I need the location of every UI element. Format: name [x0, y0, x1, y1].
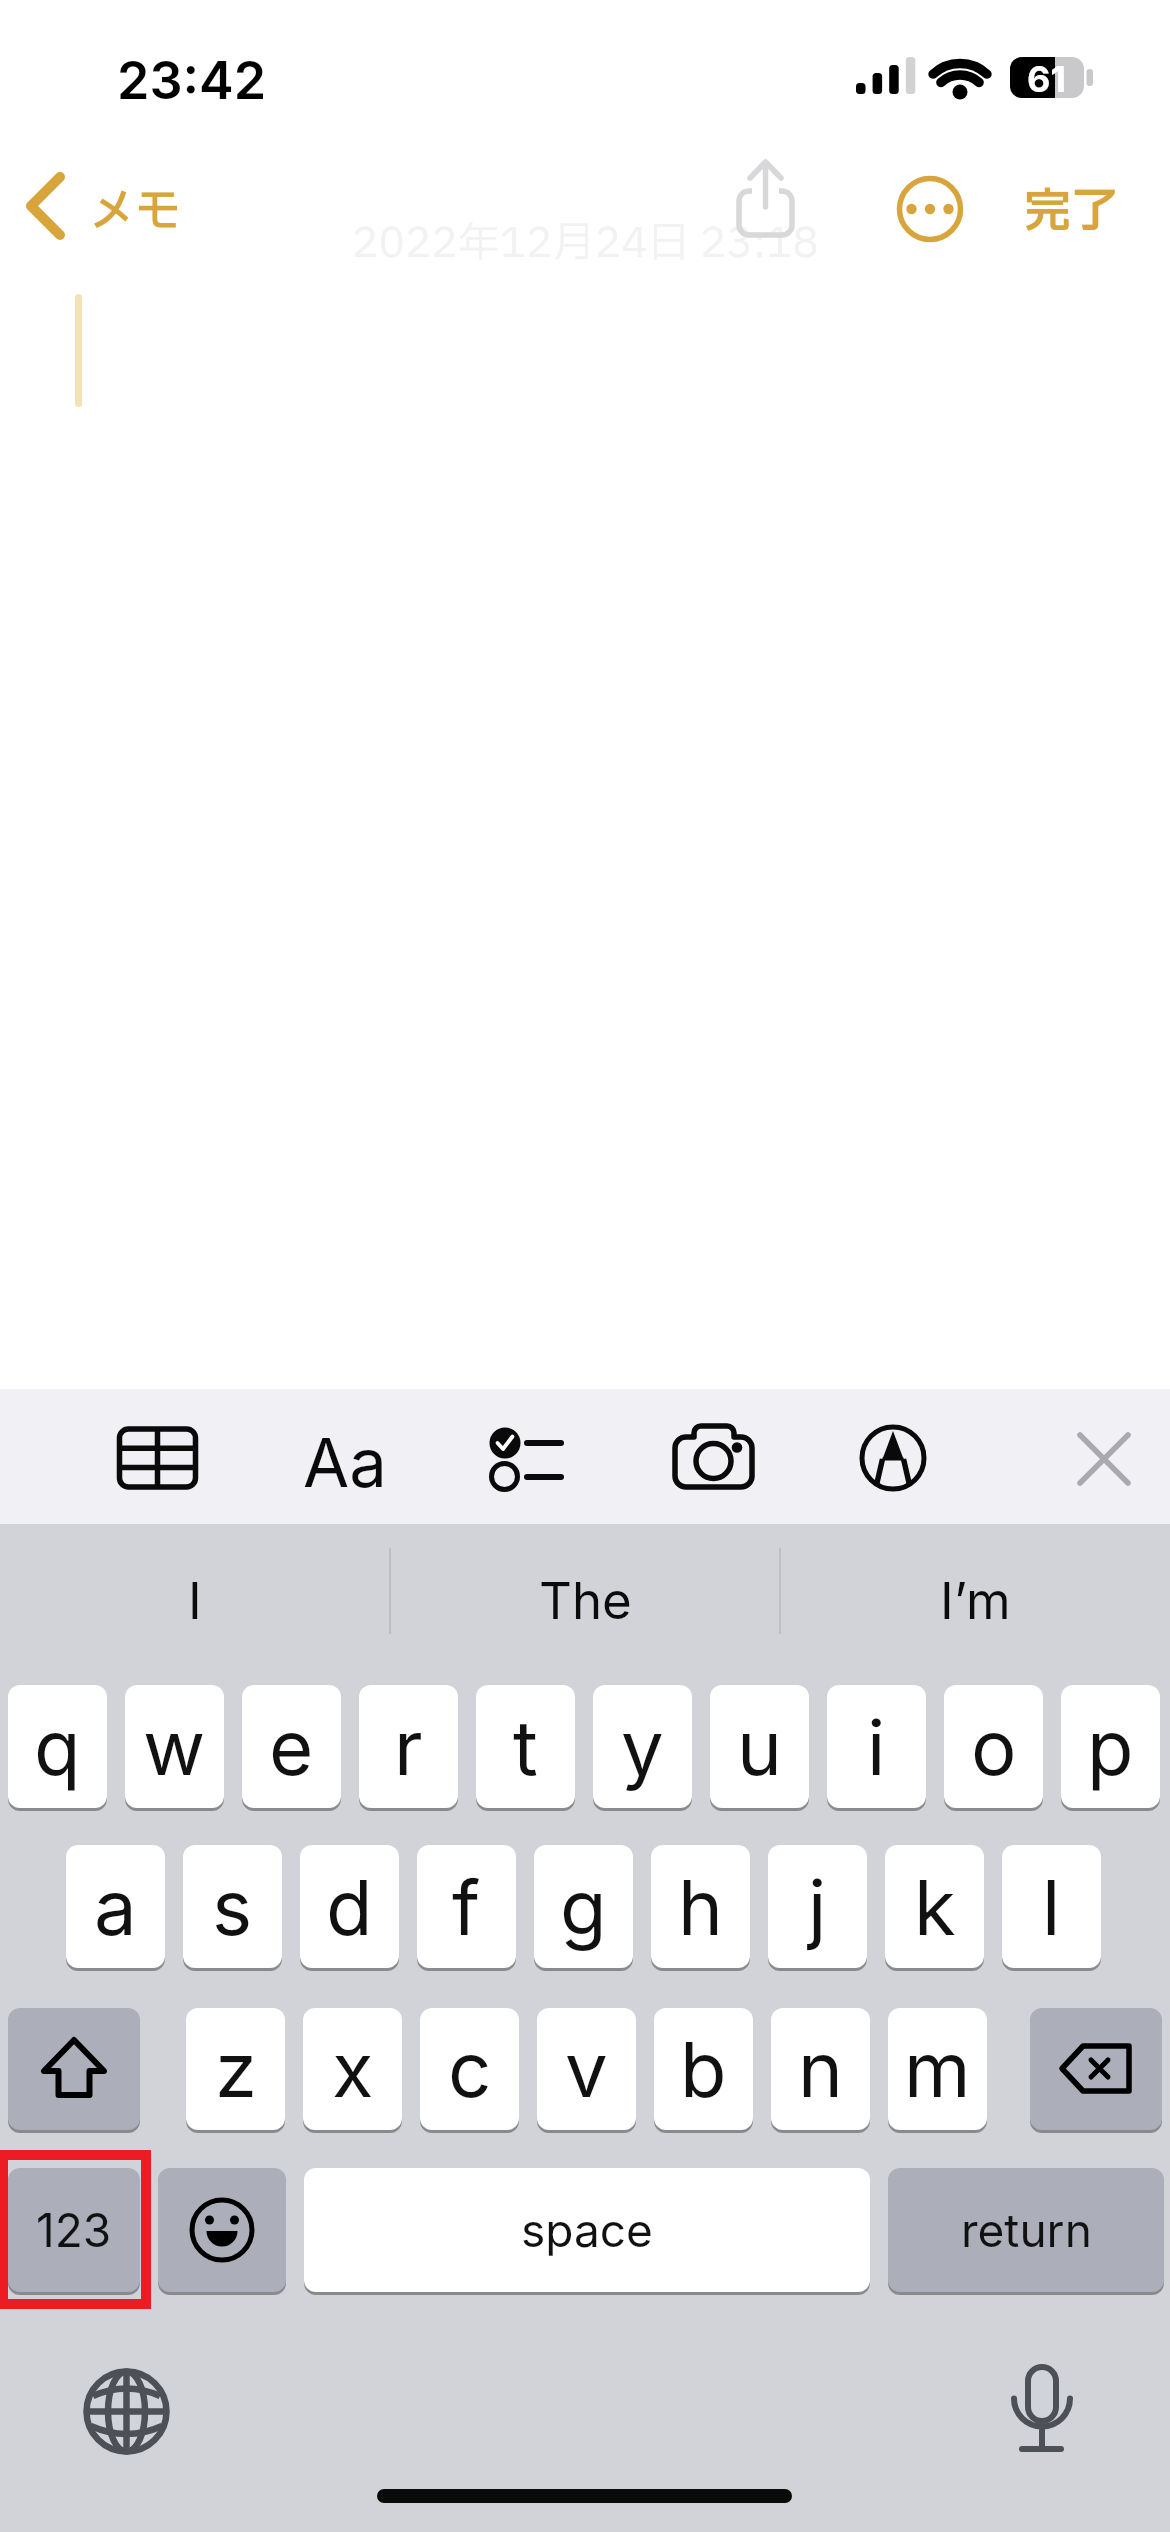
button[interactable]: Aa	[294, 1422, 395, 1494]
button[interactable]: I	[95, 1570, 295, 1630]
button[interactable]: d	[300, 1845, 399, 1968]
button[interactable]	[1005, 2355, 1080, 2455]
button[interactable]: o	[944, 1685, 1043, 1808]
button[interactable]: The	[485, 1570, 685, 1630]
staticText: I	[188, 1570, 202, 1630]
staticText: v	[565, 2023, 608, 2115]
staticText: d	[326, 1861, 373, 1953]
staticText: w	[143, 1701, 206, 1793]
staticText: f	[452, 1861, 481, 1953]
button[interactable]: v	[537, 2008, 636, 2130]
staticText: m	[904, 2023, 971, 2115]
button[interactable]: p	[1061, 1685, 1160, 1808]
button[interactable]: s	[183, 1845, 282, 1968]
staticText: j	[808, 1861, 827, 1953]
button[interactable]	[20, 170, 80, 240]
button[interactable]	[480, 1420, 575, 1500]
button[interactable]	[1068, 1425, 1138, 1495]
button[interactable]: 123	[8, 2168, 140, 2292]
staticText: 123	[36, 2202, 112, 2258]
staticText: g	[560, 1861, 607, 1953]
button[interactable]	[730, 160, 802, 240]
staticText: q	[34, 1701, 81, 1793]
button[interactable]: 完了	[1010, 177, 1132, 232]
staticText: a	[94, 1861, 137, 1953]
staticText: Aa	[303, 1422, 387, 1494]
button[interactable]: w	[125, 1685, 224, 1808]
staticText: I’m	[940, 1570, 1011, 1630]
staticText: space	[521, 2202, 653, 2258]
staticText: z	[215, 2023, 257, 2115]
button[interactable]: メモ	[86, 178, 184, 230]
staticText: return	[961, 2202, 1092, 2258]
button[interactable]	[665, 1420, 760, 1500]
button[interactable]: g	[534, 1845, 633, 1968]
button[interactable]: space	[304, 2168, 870, 2292]
button[interactable]: n	[771, 2008, 870, 2130]
button[interactable]: h	[651, 1845, 750, 1968]
button[interactable]	[1030, 2008, 1162, 2130]
button[interactable]: c	[420, 2008, 519, 2130]
staticText: p	[1087, 1701, 1134, 1793]
staticText: s	[212, 1861, 253, 1953]
button[interactable]: l	[1002, 1845, 1101, 1968]
staticText: メモ	[89, 178, 181, 230]
button[interactable]	[852, 1420, 942, 1500]
button[interactable]: q	[8, 1685, 107, 1808]
staticText: 2022年12月24日 23:18	[352, 212, 819, 268]
button[interactable]: k	[885, 1845, 984, 1968]
staticText: l	[1042, 1861, 1061, 1953]
button[interactable]	[85, 2370, 170, 2455]
button[interactable]: i	[827, 1685, 926, 1808]
staticText: e	[269, 1701, 314, 1793]
button[interactable]: I’m	[875, 1570, 1075, 1630]
staticText: 23:42	[117, 49, 267, 105]
staticText: b	[680, 2023, 727, 2115]
staticText: 完了	[1024, 177, 1118, 232]
staticText: h	[678, 1861, 723, 1953]
button[interactable]	[158, 2168, 286, 2292]
button[interactable]: return	[888, 2168, 1164, 2292]
button[interactable]: j	[768, 1845, 867, 1968]
button[interactable]: a	[66, 1845, 165, 1968]
staticText: c	[448, 2023, 492, 2115]
staticText: y	[621, 1701, 664, 1793]
button[interactable]	[110, 1420, 205, 1500]
button[interactable]: z	[186, 2008, 285, 2130]
staticText: u	[737, 1701, 782, 1793]
staticText: k	[914, 1861, 956, 1953]
button[interactable]: f	[417, 1845, 516, 1968]
button[interactable]	[8, 2008, 140, 2130]
staticText: t	[513, 1701, 538, 1793]
staticText: o	[971, 1701, 1017, 1793]
button[interactable]	[896, 175, 964, 243]
staticText: i	[867, 1701, 886, 1793]
button[interactable]: x	[303, 2008, 402, 2130]
button[interactable]: m	[888, 2008, 987, 2130]
button[interactable]: b	[654, 2008, 753, 2130]
button[interactable]: e	[242, 1685, 341, 1808]
staticText: 61	[1027, 57, 1066, 98]
staticText: The	[539, 1570, 632, 1630]
button[interactable]: y	[593, 1685, 692, 1808]
button[interactable]: u	[710, 1685, 809, 1808]
button[interactable]: r	[359, 1685, 458, 1808]
staticText: x	[332, 2023, 374, 2115]
button[interactable]: t	[476, 1685, 575, 1808]
staticText: r	[394, 1701, 423, 1793]
staticText: n	[798, 2023, 843, 2115]
